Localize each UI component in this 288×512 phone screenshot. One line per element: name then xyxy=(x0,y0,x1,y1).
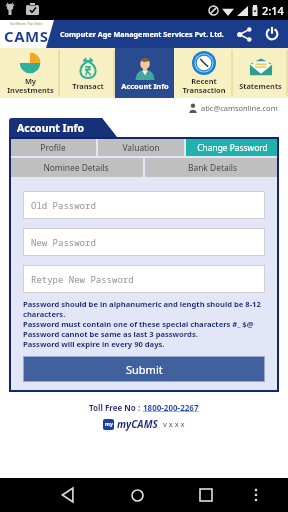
staticText: Password should be in alphanumeric and l… xyxy=(23,299,265,319)
staticText: Password must contain one of these speci… xyxy=(23,319,254,329)
staticText: Your Returns · Your Choice xyxy=(10,22,43,26)
button[interactable]: 1800-200-2267 xyxy=(143,402,199,413)
staticText: my xyxy=(105,421,113,428)
staticText: Change Password xyxy=(197,142,268,153)
button[interactable]: Nominee Details xyxy=(9,158,143,177)
staticText: 1800-200-2267 xyxy=(143,402,199,413)
button[interactable]: Home xyxy=(120,478,154,512)
staticText: My Investments xyxy=(7,76,54,95)
button[interactable]: Back xyxy=(51,478,85,512)
staticText: 2:14 xyxy=(262,3,284,18)
staticText: Transact xyxy=(72,81,104,91)
button[interactable]: Submit xyxy=(23,356,265,382)
button[interactable]: Statements xyxy=(233,48,288,98)
staticText: Toll Free No : xyxy=(89,402,143,413)
staticText: Password cannot be same as last 3 passwo… xyxy=(23,329,198,339)
staticText: v x x x xyxy=(163,419,185,429)
button[interactable]: My Investments xyxy=(0,48,60,98)
button[interactable]: Recent apps xyxy=(189,478,223,512)
button[interactable]: Change Password xyxy=(186,138,279,156)
button[interactable]: Bank Details xyxy=(145,158,279,177)
staticText: Recent Transaction xyxy=(182,76,226,95)
button[interactable]: Account Info xyxy=(115,48,174,98)
staticText: Nominee Details xyxy=(43,162,109,173)
staticText: Valuation xyxy=(122,142,160,153)
staticText: Account Info xyxy=(121,81,169,91)
staticText: myCAMS xyxy=(117,417,158,431)
button[interactable]: Old Password xyxy=(23,191,265,219)
button[interactable]: Transact xyxy=(60,48,115,98)
button[interactable]: Valuation xyxy=(98,138,184,156)
staticText: abc@camsonline.com xyxy=(201,103,278,113)
staticText: Retype New Password xyxy=(31,273,134,285)
button[interactable]: Profile xyxy=(9,138,96,156)
staticText: Computer Age Management Services Pvt. Lt… xyxy=(60,29,224,39)
button[interactable]: Logout xyxy=(261,23,283,45)
staticText: Bank Details xyxy=(188,162,237,173)
staticText: Old Password xyxy=(31,199,96,211)
button[interactable]: Retype New Password xyxy=(23,265,265,293)
button[interactable]: Recent Transaction xyxy=(174,48,233,98)
staticText: CAMS xyxy=(4,26,49,46)
button[interactable]: Share xyxy=(233,23,255,45)
staticText: Statements xyxy=(239,81,282,91)
button[interactable]: New Password xyxy=(23,228,265,256)
staticText: Password will expire in every 90 days. xyxy=(23,339,165,349)
staticText: Profile xyxy=(40,142,66,153)
staticText: Submit xyxy=(126,362,163,377)
staticText: Account Info xyxy=(17,121,85,135)
button[interactable]: More options xyxy=(242,481,270,509)
staticText: New Password xyxy=(31,236,96,248)
